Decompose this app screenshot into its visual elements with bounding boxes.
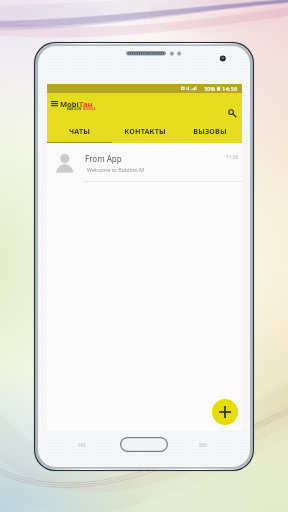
button[interactable]: ЧАТЫ bbox=[47, 119, 112, 143]
staticText: BABILON bbox=[67, 107, 83, 111]
staticText: Mobi bbox=[60, 99, 79, 109]
staticText: Тан bbox=[79, 99, 93, 109]
button[interactable]: New chat bbox=[212, 399, 238, 425]
staticText: 14:56 bbox=[222, 85, 238, 93]
staticText: ЧАТЫ bbox=[69, 126, 90, 136]
staticText: Welcome to Babilon-M bbox=[87, 166, 145, 173]
button[interactable]: Search bbox=[224, 105, 241, 122]
staticText: КОНТАКТЫ bbox=[124, 126, 166, 136]
staticText: MOBILE bbox=[83, 107, 96, 111]
button[interactable]: КОНТАКТЫ bbox=[112, 119, 177, 143]
staticText: 30% bbox=[204, 85, 216, 93]
button[interactable]: Open navigation menu bbox=[47, 97, 61, 110]
staticText: 11:26 bbox=[226, 154, 239, 161]
button[interactable]: ВЫЗОВЫ bbox=[177, 119, 242, 143]
staticText: From App bbox=[85, 153, 122, 164]
staticText: ВЫЗОВЫ bbox=[193, 126, 227, 136]
button[interactable]: From App bbox=[47, 143, 242, 182]
